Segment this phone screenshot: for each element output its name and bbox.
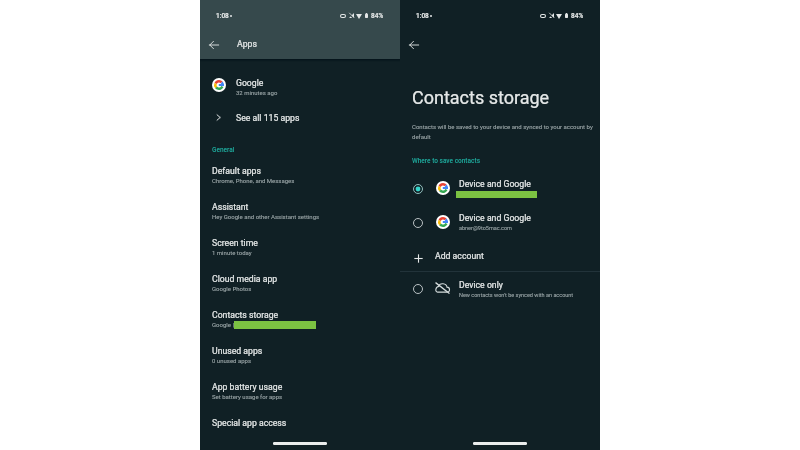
staticText: See all 115 apps — [236, 113, 300, 123]
button[interactable]: Device and Google — [400, 171, 600, 205]
staticText: 1 minute today — [212, 249, 252, 256]
staticText: Contacts storage — [412, 87, 550, 108]
staticText: Device and Google — [459, 179, 531, 189]
staticText: Device only — [459, 280, 503, 290]
staticText: Special app access — [212, 418, 287, 428]
staticText: Screen time — [212, 238, 258, 248]
button[interactable]: Unused apps — [200, 341, 400, 375]
button[interactable]: Screen time — [200, 233, 400, 267]
staticText: 84% — [371, 12, 384, 20]
button[interactable]: Cloud media app — [200, 269, 400, 303]
button[interactable]: See all 115 apps — [200, 106, 400, 130]
staticText: Chrome, Phone, and Messages — [212, 177, 295, 184]
staticText: Assistant — [212, 202, 249, 212]
staticText: 84% — [571, 12, 584, 20]
staticText: Google Photos — [212, 285, 252, 292]
staticText: Set battery usage for apps — [212, 393, 283, 400]
staticText: Contacts will be saved to your device an… — [412, 123, 596, 140]
button[interactable]: Contacts storage — [200, 305, 400, 339]
staticText: 0 unused apps — [212, 357, 252, 364]
button[interactable]: App battery usage — [200, 377, 400, 411]
button[interactable]: Google — [200, 70, 400, 102]
staticText: abner@9to5mac.com — [459, 225, 512, 231]
staticText: App battery usage — [212, 382, 283, 392]
staticText: Where to save contacts — [412, 157, 480, 165]
staticText: Device and Google — [459, 213, 531, 223]
button[interactable]: Back — [204, 35, 223, 54]
staticText: Add account — [435, 251, 484, 261]
button[interactable]: Special app access — [200, 413, 400, 447]
button[interactable]: Device and Google — [400, 205, 600, 239]
staticText: 32 minutes ago — [236, 89, 278, 96]
staticText: Cloud media app — [212, 274, 278, 284]
button[interactable]: Device only — [400, 272, 600, 306]
button[interactable]: Add account — [400, 241, 600, 271]
button[interactable]: Default apps — [200, 161, 400, 195]
staticText: New contacts won't be synced with an acc… — [459, 292, 574, 298]
button[interactable]: Back — [404, 35, 423, 54]
staticText: Contacts storage — [212, 310, 279, 320]
staticText: Google | — [212, 321, 234, 328]
staticText: Unused apps — [212, 346, 263, 356]
button[interactable]: Assistant — [200, 197, 400, 231]
staticText: General — [212, 146, 235, 154]
staticText: 1:08 — [416, 12, 429, 20]
staticText: Apps — [237, 39, 257, 49]
staticText: Hey Google and other Assistant settings — [212, 213, 320, 220]
staticText: 1:08 — [216, 12, 229, 20]
staticText: Default apps — [212, 166, 261, 176]
staticText: Google — [236, 78, 264, 88]
